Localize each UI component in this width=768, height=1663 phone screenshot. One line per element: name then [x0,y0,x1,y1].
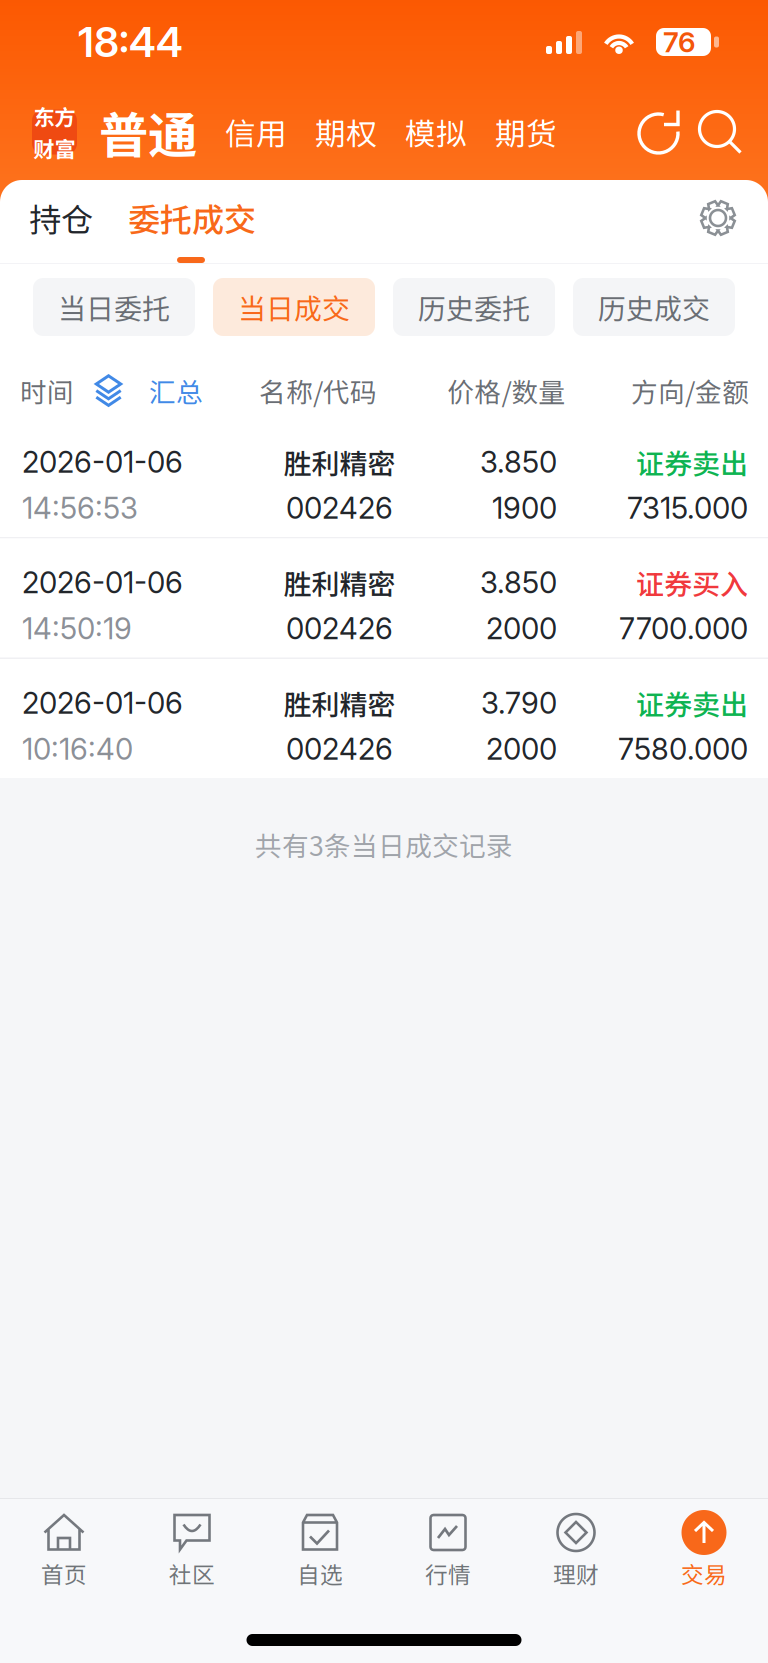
staticText: 价格/数量 [447,371,565,410]
staticText: 2026-01-06 [22,565,183,600]
button[interactable]: 理财 [512,1510,640,1590]
staticText: 胜利精密 [283,442,395,482]
staticText: 7580.000 [618,731,748,767]
staticText: 富 [54,132,75,163]
button[interactable]: 首页 [0,1510,128,1590]
staticText: 胜利精密 [283,683,395,723]
staticText: 东 [33,101,54,131]
staticText: 3.790 [481,685,557,721]
button[interactable]: 行情 [384,1510,512,1590]
staticText: 18:44 [78,17,183,67]
button[interactable]: 持仓 [30,202,92,233]
staticText: 当日成交 [238,287,350,327]
button[interactable]: 历史成交 [573,278,735,336]
staticText: 3.850 [480,444,557,480]
button[interactable]: 交易 [640,1510,768,1590]
staticText: 普通 [99,96,197,168]
staticText: 证券卖出 [636,683,748,723]
staticText: 002426 [286,611,393,646]
staticText: 首页 [41,1557,87,1590]
staticText: 模拟 [405,110,467,154]
staticText: 2026-01-06 [22,685,183,721]
staticText: 3.850 [480,565,557,600]
staticText: 2000 [486,731,557,767]
button[interactable]: 当日成交 [213,278,375,336]
staticText: 行情 [425,1557,471,1590]
button[interactable]: 自选 [256,1510,384,1590]
button[interactable]: 当日委托 [33,278,195,336]
staticText: 时间 [20,371,74,410]
staticText: 信用 [225,110,287,154]
staticText: 交易 [681,1557,727,1590]
staticText: 76 [663,25,696,59]
staticText: 10:16:40 [22,731,133,767]
button[interactable]: 委托成交 [130,202,254,233]
staticText: 方向/金额 [631,371,749,410]
staticText: 历史委托 [418,287,530,327]
staticText: 期货 [495,110,557,154]
staticText: 社区 [169,1557,215,1590]
staticText: 期权 [315,110,377,154]
staticText: 委托成交 [128,194,256,241]
staticText: 14:50:19 [22,611,132,646]
button[interactable]: 2026-01-06 [0,538,768,657]
staticText: 7700.000 [619,611,748,646]
button[interactable]: 历史委托 [393,278,555,336]
staticText: 14:56:53 [22,490,138,526]
button[interactable]: 社区 [128,1510,256,1590]
staticText: 理财 [553,1557,599,1590]
staticText: 持仓 [29,194,93,241]
staticText: 胜利精密 [283,562,395,603]
button[interactable]: Refresh [634,106,686,158]
staticText: 财 [33,132,54,163]
staticText: 方 [54,101,75,131]
staticText: 002426 [286,731,393,767]
staticText: 名称/代码 [259,371,377,410]
staticText: 当日委托 [58,287,170,327]
button[interactable]: 2026-01-06 [0,659,768,778]
staticText: 证券卖出 [636,442,748,482]
button[interactable]: Search [694,106,746,158]
staticText: 自选 [297,1557,343,1590]
staticText: 7315.000 [627,490,748,526]
staticText: 002426 [286,490,393,526]
staticText: 1900 [492,490,557,526]
button[interactable]: 汇总 [92,371,203,410]
staticText: 共有3条当日成交记录 [255,825,513,864]
staticText: 2000 [486,611,557,646]
button[interactable]: Settings [699,199,737,237]
staticText: 证券买入 [636,562,748,603]
staticText: 2026-01-06 [22,444,183,480]
staticText: 历史成交 [598,287,710,327]
button[interactable]: 2026-01-06 [0,418,768,537]
staticText: 汇总 [149,371,203,410]
